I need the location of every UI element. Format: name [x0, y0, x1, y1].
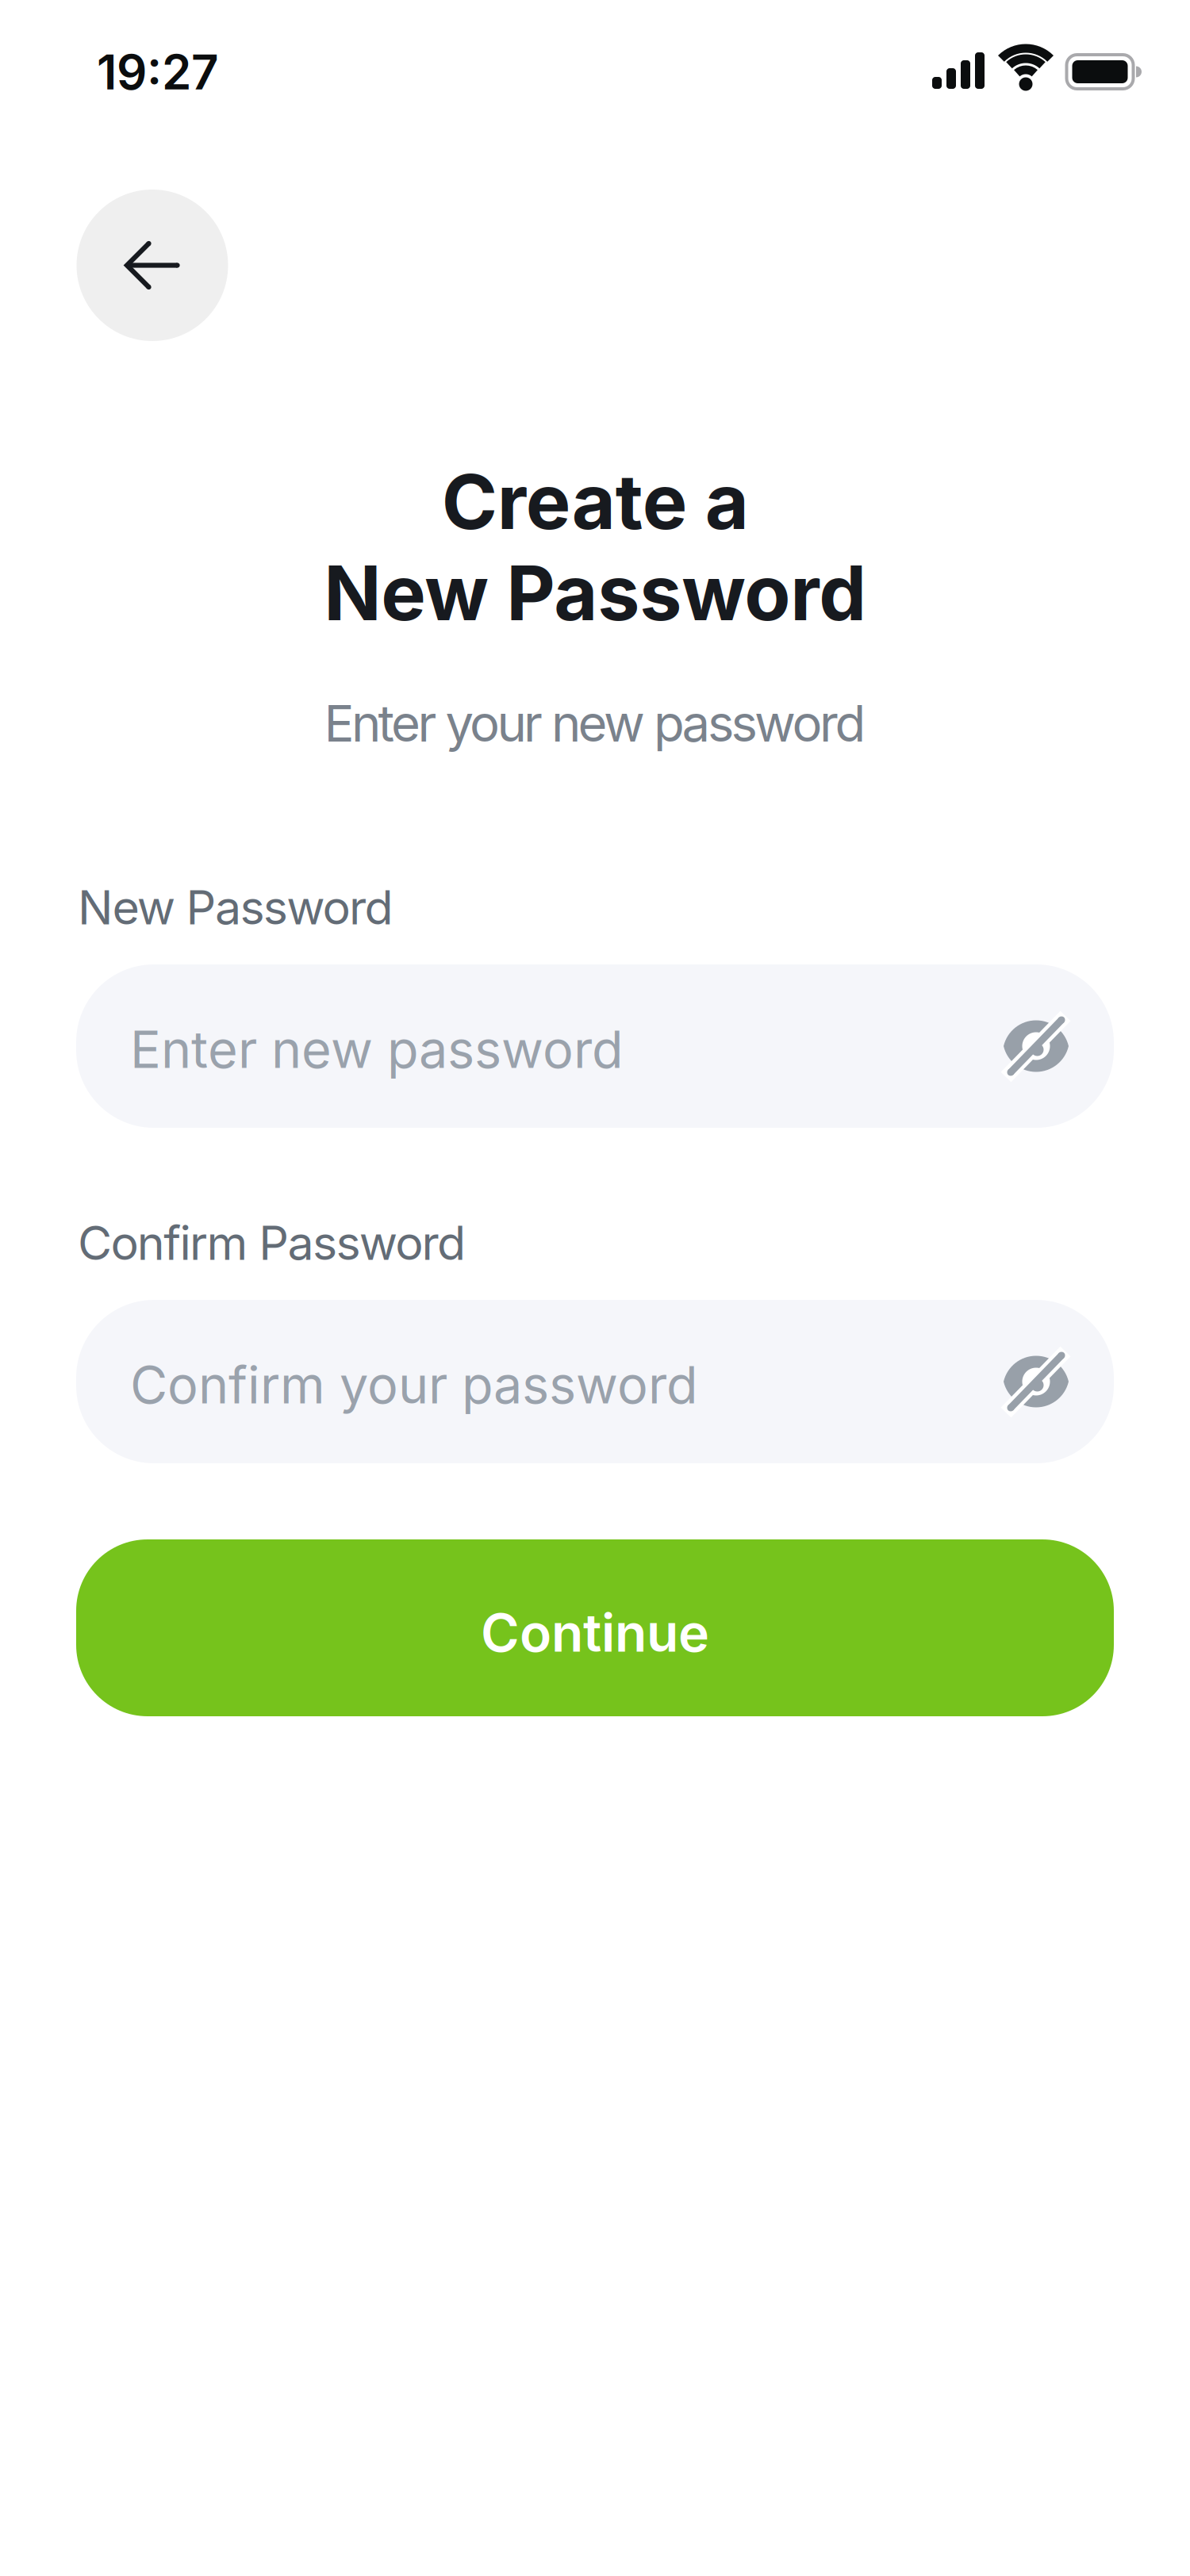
staticText: Confirm your password — [130, 1354, 698, 1416]
button[interactable]: Enter new password — [76, 964, 1114, 1128]
staticText: 19:27 — [97, 43, 219, 101]
button[interactable]: Back — [77, 190, 228, 341]
staticText: Confirm Password — [78, 1214, 466, 1271]
button[interactable]: Continue — [76, 1539, 1114, 1716]
staticText: Create a New Password — [324, 456, 866, 638]
button[interactable]: Confirm your password — [76, 1300, 1114, 1463]
staticText: Enter new password — [130, 1018, 624, 1080]
staticText: Enter your new password — [324, 693, 866, 754]
staticText: New Password — [78, 879, 393, 936]
staticText: Continue — [481, 1601, 709, 1664]
